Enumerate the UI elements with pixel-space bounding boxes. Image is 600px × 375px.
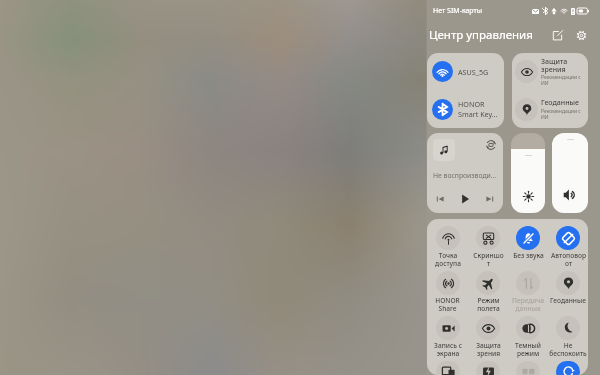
button[interactable]: Edit <box>550 28 564 42</box>
staticText: Smart Key… <box>458 109 498 119</box>
button[interactable]: Геоданные <box>548 264 588 309</box>
staticText: Рекомендации с ИИ <box>541 108 581 121</box>
staticText: Геоданные <box>550 296 586 305</box>
button[interactable]: Cast <box>485 139 497 151</box>
button[interactable]: Точка доступа <box>427 219 468 264</box>
staticText: Рекомендации с ИИ <box>541 74 581 87</box>
staticText: Режим полета <box>477 296 500 313</box>
staticText: Защита зрения <box>476 341 501 358</box>
staticText: Темный режим <box>515 341 541 358</box>
button[interactable]: Геоданные <box>512 90 588 128</box>
button[interactable]: Проекция <box>427 354 468 375</box>
button[interactable]: Фонарик <box>468 354 508 375</box>
button[interactable]: Bluetooth <box>548 354 588 375</box>
button[interactable]: Не беспокоить <box>548 309 588 354</box>
staticText: HONOR <box>458 99 485 109</box>
button[interactable]: Previous <box>434 193 446 205</box>
staticText: Не воспроизводи… <box>433 171 497 180</box>
button[interactable]: Защита зрения <box>468 309 508 354</box>
button[interactable]: Скриншо т <box>468 219 508 264</box>
button[interactable]: Brightness <box>511 133 545 213</box>
button[interactable]: Volume <box>552 133 588 213</box>
button[interactable]: Темный режим <box>508 309 548 354</box>
staticText: Скриншо т <box>473 251 504 268</box>
button[interactable]: Передача данных <box>508 264 548 309</box>
staticText: Не беспокоить <box>549 341 587 358</box>
button[interactable]: Режим полета <box>468 264 508 309</box>
staticText: Передача данных <box>512 296 544 313</box>
staticText: Точка доступа <box>435 251 461 268</box>
staticText: Центр управления <box>429 27 533 43</box>
button[interactable]: 5G <box>508 354 548 375</box>
button[interactable]: Play <box>457 191 473 207</box>
staticText: Без звука <box>513 251 544 260</box>
button[interactable]: Защита зрения <box>512 53 588 90</box>
button[interactable]: Без звука <box>508 219 548 264</box>
staticText: HONOR Share <box>435 296 460 313</box>
staticText: Геоданные <box>541 98 579 108</box>
button[interactable]: Автоповор от <box>548 219 588 264</box>
button[interactable]: Next <box>484 193 496 205</box>
staticText: Нет SIM-карты <box>433 6 483 16</box>
button[interactable]: Settings <box>574 28 588 42</box>
button[interactable]: HONOR <box>427 90 504 128</box>
staticText: ASUS_5G <box>458 67 489 77</box>
button[interactable]: Запись с экрана <box>427 309 468 354</box>
staticText: Запись с экрана <box>434 341 462 358</box>
staticText: Защита зрения <box>541 57 568 74</box>
staticText: Автоповор от <box>551 251 586 268</box>
button[interactable]: HONOR Share <box>427 264 468 309</box>
button[interactable]: ASUS_5G <box>427 53 504 90</box>
